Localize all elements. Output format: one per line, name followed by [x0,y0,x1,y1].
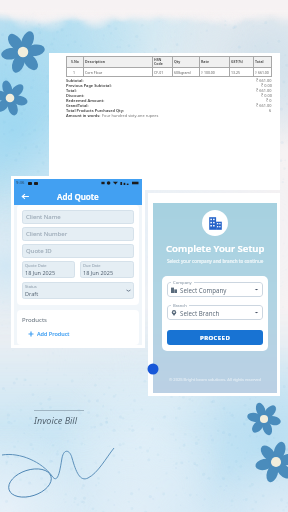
staticText: Client Name [26,213,61,221]
staticText: Status [25,284,37,289]
button[interactable]: Quote Date [22,261,75,278]
staticText: GST(%) [231,59,244,64]
staticText: 9:36 [16,180,25,186]
staticText: Quote ID [26,247,52,255]
staticText: 13.25 [231,70,240,75]
button[interactable]: Back [14,187,36,205]
staticText: Company [173,280,192,286]
staticText: S.No [71,59,79,64]
staticText: ₹ 0.00 [261,93,272,98]
button[interactable]: Select Company [167,282,263,297]
staticText: ₹ 661.00 [256,88,272,93]
staticText: PROCEED [200,334,231,342]
staticText: Discount: [66,93,85,98]
staticText: GrandTotal: [66,103,89,108]
staticText: ₹ 661.00 [255,70,269,75]
staticText: Corn Flour [85,70,103,75]
staticText: Total [255,59,264,64]
staticText: HSN Code [154,57,163,66]
staticText: ₹ 661.00 [256,78,272,83]
staticText: Select Company [180,286,227,294]
staticText: Add Product [37,330,70,337]
staticText: Draft [25,290,39,297]
staticText: Redeemed Amount: [66,98,105,103]
staticText: Due Date [83,263,101,268]
button[interactable]: Status [22,282,134,299]
button[interactable]: Client Number [22,227,134,241]
staticText: Total Products Purchased Qty: [66,108,125,113]
staticText: ₹ 0 [266,98,272,103]
staticText: Description [85,59,106,64]
staticText: 6 [269,108,272,113]
staticText: Add Quote [57,191,99,202]
staticText: Previous Page Subtotal: [66,83,112,88]
staticText: Products [22,316,47,324]
button[interactable]: Quote ID [22,244,134,258]
staticText: Invoice Bill [34,414,77,426]
staticText: Quote Date [25,263,47,268]
button[interactable]: Select Branch [167,305,263,320]
staticText: 1 [73,70,76,75]
staticText: 18 Jun 2025 [83,269,114,276]
staticText: ₹ 661.00 [256,103,272,108]
button[interactable]: PROCEED [167,330,263,345]
staticText: Select Branch [180,309,220,317]
staticText: ₹ 0.00 [261,83,272,88]
button[interactable]: Client Name [22,210,134,224]
staticText: 60(kgram) [174,70,191,75]
button[interactable]: Due Date [80,261,134,278]
staticText: Four hundred sixty-one rupees [101,113,159,118]
staticText: Subtotal: [66,78,84,83]
staticText: Client Number [26,230,68,238]
staticText: ₹ 100.00 [201,70,215,75]
staticText: Qty [174,59,181,64]
staticText: CF-01 [154,70,164,75]
staticText: © 2025 Bright beam solutions. All rights… [169,377,262,382]
staticText: Branch [173,303,187,309]
staticText: Total: [66,88,77,93]
staticText: 18 Jun 2025 [25,269,56,276]
button[interactable]: Add Product [28,330,70,337]
staticText: Rate [201,59,210,64]
staticText: Amount in words: [66,113,101,118]
staticText: Select your company and branch to contin… [167,258,264,264]
staticText: Complete Your Setup [166,242,265,255]
